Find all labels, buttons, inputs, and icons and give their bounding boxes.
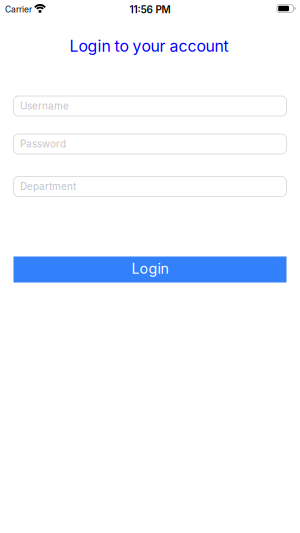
staticText: Department <box>20 180 76 192</box>
button[interactable]: Password <box>13 133 287 154</box>
staticText: Username <box>20 100 69 112</box>
staticText: Carrier <box>5 4 32 15</box>
staticText: 11:56 PM <box>129 3 170 16</box>
staticText: Login to your account <box>69 36 228 55</box>
button[interactable]: Username <box>13 95 287 116</box>
button[interactable]: Department <box>13 176 287 197</box>
button[interactable]: Login <box>13 256 286 282</box>
staticText: Password <box>20 138 66 150</box>
staticText: Login <box>131 260 168 277</box>
